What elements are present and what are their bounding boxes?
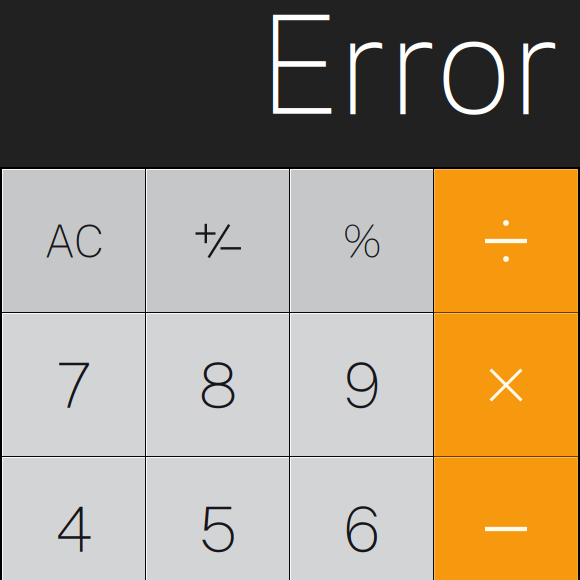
button[interactable]: 7 <box>2 313 146 457</box>
button[interactable]: Divide <box>434 169 578 313</box>
staticText: 8 <box>198 348 237 422</box>
button[interactable]: 9 <box>290 313 434 457</box>
button[interactable]: All clear <box>2 169 146 313</box>
button[interactable]: Plus minus <box>146 169 290 313</box>
staticText: 4 <box>55 492 93 566</box>
staticText: 6 <box>343 492 380 566</box>
staticText: 5 <box>199 492 237 566</box>
button[interactable]: Multiply <box>434 313 578 457</box>
staticText: 7 <box>56 348 92 422</box>
staticText: 9 <box>343 348 380 422</box>
button[interactable]: 6 <box>290 457 434 580</box>
staticText: Error <box>258 0 561 144</box>
button[interactable]: Subtract <box>434 457 578 580</box>
button[interactable]: 4 <box>2 457 146 580</box>
button[interactable]: Percent <box>290 169 434 313</box>
staticText: % <box>342 214 381 268</box>
button[interactable]: 5 <box>146 457 290 580</box>
button[interactable]: 8 <box>146 313 290 457</box>
staticText: AC <box>44 214 104 268</box>
